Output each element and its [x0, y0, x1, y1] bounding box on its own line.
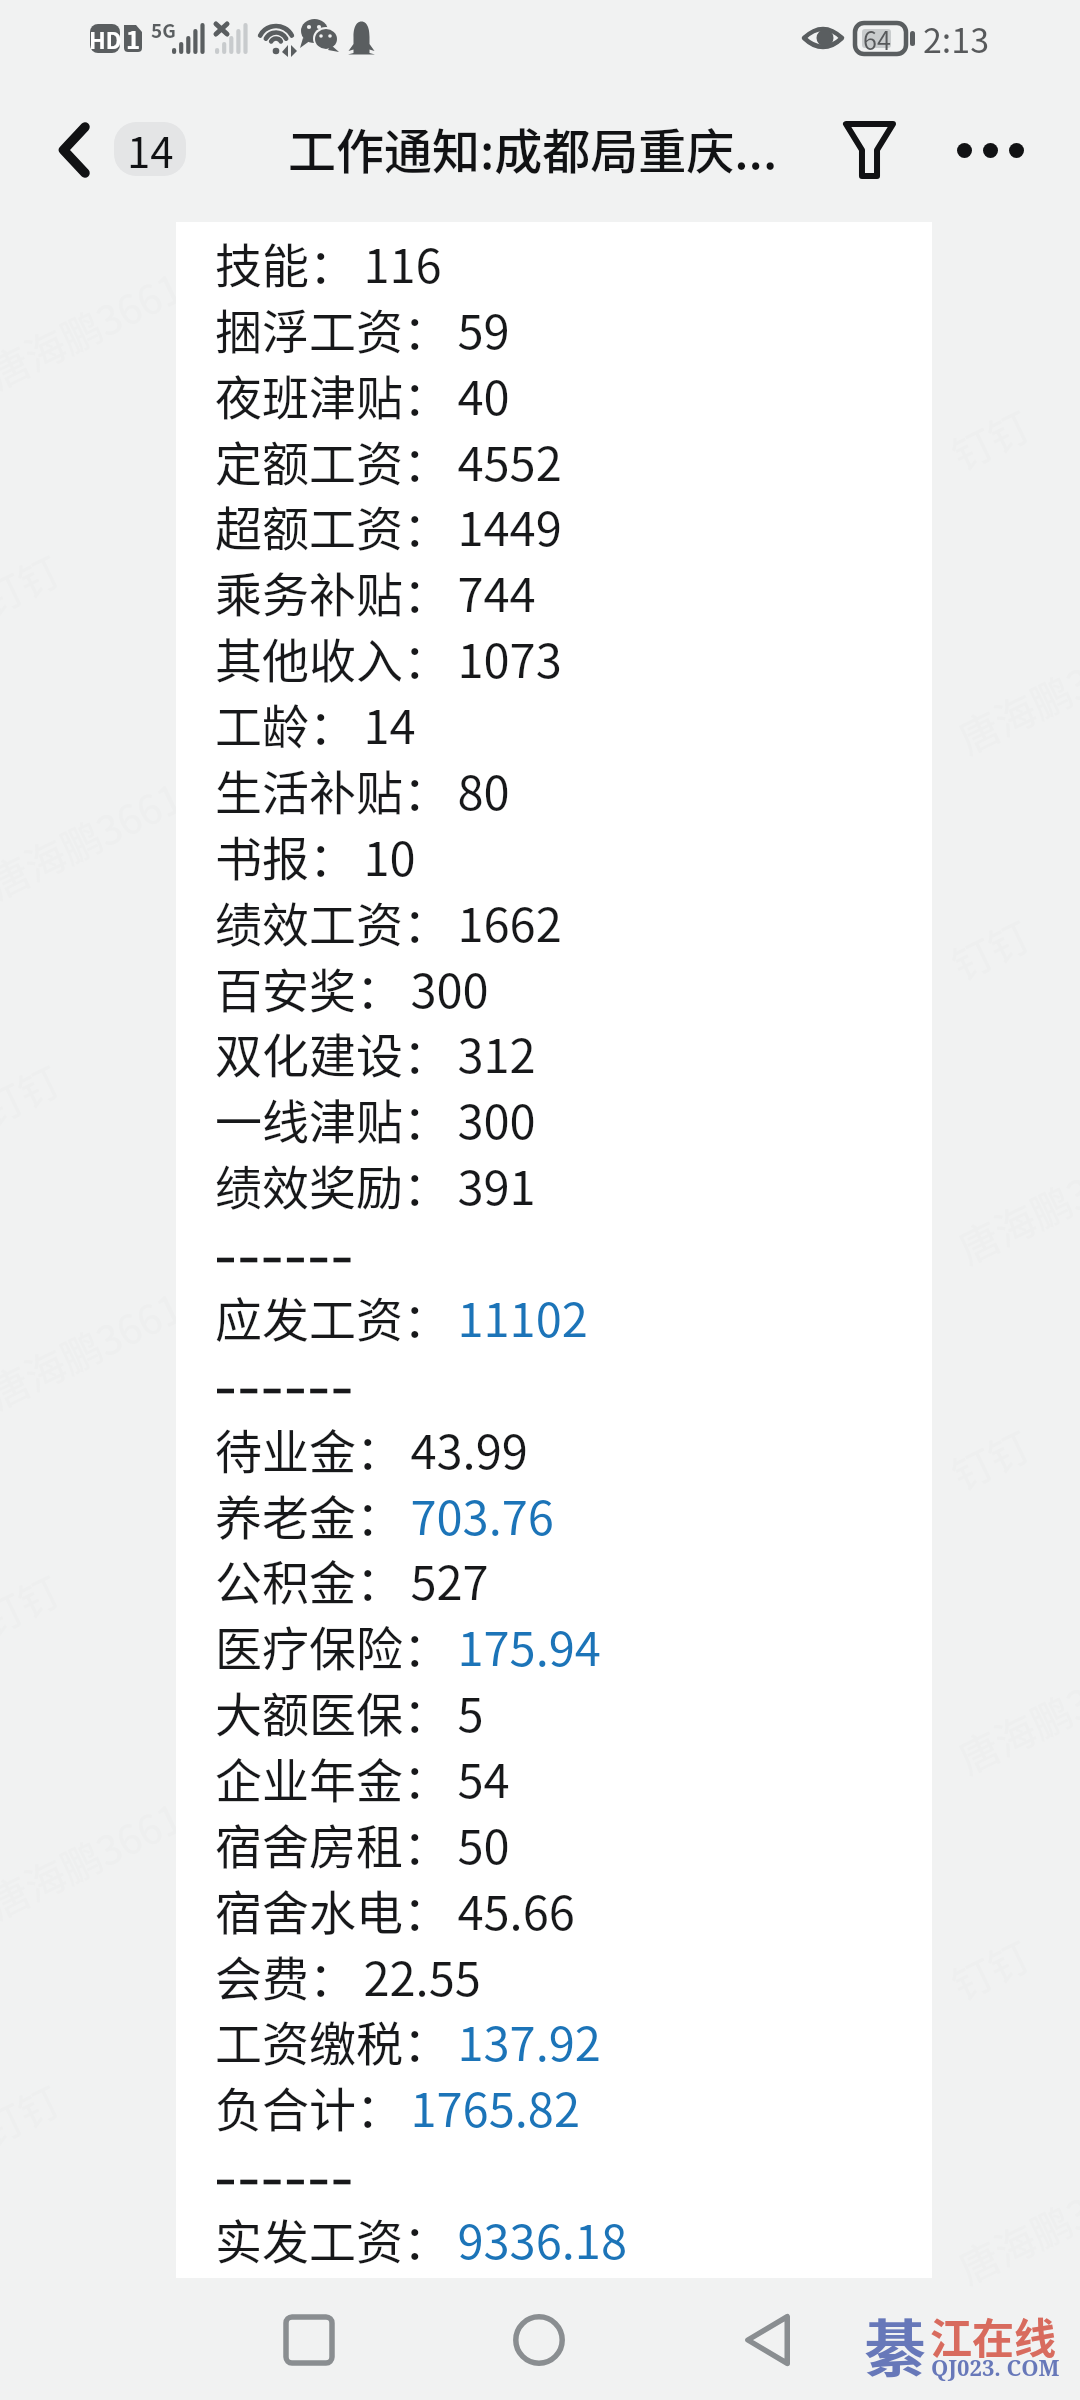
- staticText: 唐海鹏3661: [0, 1787, 191, 1931]
- button[interactable]: Back: [42, 100, 104, 200]
- staticText: 实发工资： 9336.18: [215, 2204, 627, 2272]
- staticText: 绩效奖励： 391: [215, 1150, 536, 1218]
- button[interactable]: 技能： 116: [176, 222, 932, 2278]
- staticText: 双化建设： 312: [215, 1018, 536, 1086]
- staticText: 工资缴税： 137.92: [215, 2006, 601, 2074]
- button[interactable]: Recents: [264, 2295, 354, 2385]
- staticText: 捆浮工资： 59: [215, 294, 510, 362]
- staticText: 公积金： 527: [215, 1545, 489, 1613]
- button[interactable]: 14: [114, 122, 186, 176]
- staticText: 唐海鹏3661: [0, 257, 191, 401]
- staticText: 百安奖： 300: [215, 953, 489, 1021]
- staticText: 生活补贴： 80: [215, 755, 510, 823]
- button[interactable]: Back: [724, 2295, 814, 2385]
- staticText: 5G: [151, 16, 176, 44]
- staticText: 江在线: [930, 2305, 1057, 2366]
- staticText: 1: [126, 21, 141, 56]
- staticText: 应发工资： 11102: [215, 1282, 588, 1350]
- staticText: 乘务补贴： 744: [215, 557, 536, 625]
- staticText: 宿舍水电： 45.66: [215, 1875, 575, 1943]
- staticText: 一线津贴： 300: [215, 1084, 536, 1152]
- staticText: 唐海鹏3661: [0, 1277, 191, 1421]
- staticText: 待业金： 43.99: [215, 1414, 528, 1482]
- staticText: 医疗保险： 175.94: [215, 1611, 601, 1679]
- staticText: 宿舍房租： 50: [215, 1809, 510, 1877]
- staticText: 工龄： 14: [215, 689, 416, 757]
- staticText: 2:13: [923, 14, 990, 63]
- staticText: 14: [127, 122, 174, 173]
- staticText: 会费： 22.55: [215, 1941, 481, 2009]
- staticText: 技能： 116: [215, 228, 442, 296]
- staticText: 其他收入： 1073: [215, 623, 562, 691]
- staticText: 书报： 10: [215, 821, 416, 889]
- staticText: HD: [89, 23, 122, 55]
- staticText: 唐海鹏3661: [0, 767, 191, 911]
- staticText: 超额工资： 1449: [215, 491, 562, 559]
- button[interactable]: Home: [494, 2295, 584, 2385]
- staticText: 负合计： 1765.82: [215, 2072, 580, 2140]
- button[interactable]: More options: [940, 100, 1040, 200]
- staticText: QJ023. COM: [931, 2352, 1060, 2382]
- staticText: 64: [863, 21, 891, 57]
- staticText: 养老金： 703.76: [215, 1480, 554, 1548]
- staticText: 企业年金： 54: [215, 1743, 510, 1811]
- button[interactable]: Filter: [828, 100, 910, 200]
- staticText: 定额工资： 4552: [215, 426, 562, 494]
- staticText: 大额医保： 5: [215, 1677, 484, 1745]
- staticText: 工作通知:成都局重庆...: [288, 113, 778, 183]
- staticText: 绩效工资： 1662: [215, 887, 562, 955]
- staticText: 綦: [864, 2300, 927, 2390]
- staticText: 夜班津贴： 40: [215, 360, 510, 428]
